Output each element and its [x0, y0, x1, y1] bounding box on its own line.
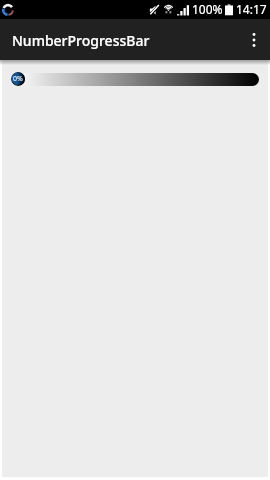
staticText: NumberProgressBar: [12, 31, 150, 50]
staticText: 0%: [13, 74, 23, 84]
staticText: 14:17: [236, 1, 267, 17]
button[interactable]: More options: [238, 19, 270, 60]
button[interactable]: Progress 0 percent: [11, 72, 25, 86]
staticText: 100%: [192, 1, 223, 17]
button[interactable]: Progress track: [12, 73, 259, 86]
